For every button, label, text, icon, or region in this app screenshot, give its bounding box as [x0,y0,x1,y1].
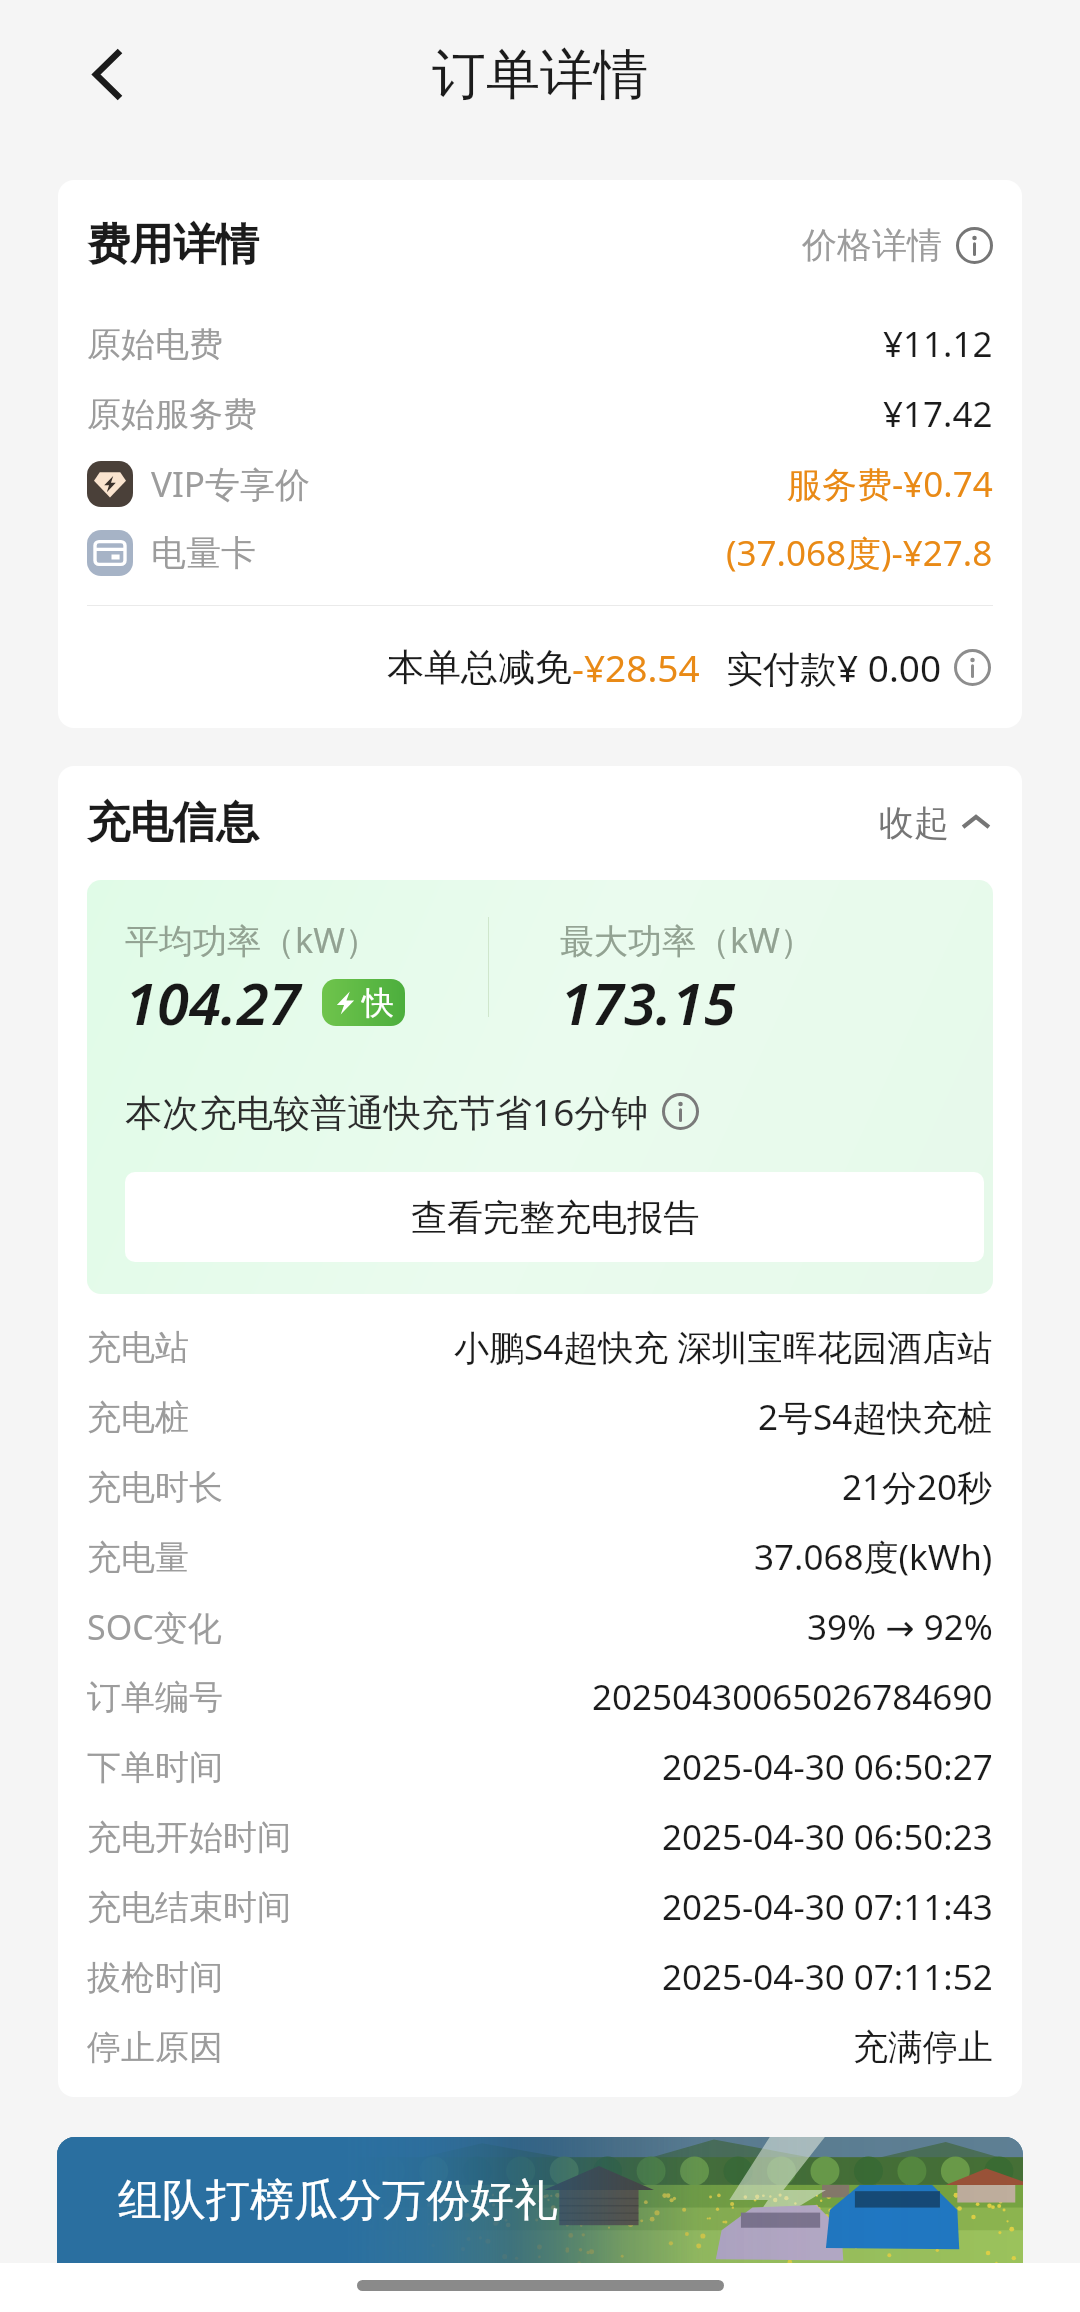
staticText: 小鹏S4超快充 深圳宝晖花园酒店站 [454,1323,993,1371]
staticText: (37.068度)-¥27.8 [726,529,993,577]
staticText: 充满停止 [853,2025,993,2069]
staticText: 停止原因 [87,2026,223,2069]
staticText: 充电量 [87,1536,189,1579]
staticText: 充电信息 [87,796,259,850]
staticText: 2025-04-30 07:11:52 [662,1953,993,2001]
staticText: 充电站 [87,1326,189,1369]
staticText: 充电时长 [87,1466,223,1509]
staticText: 查看完整充电报告 [411,1195,699,1240]
staticText: 订单详情 [432,41,648,109]
staticText: 原始服务费 [87,393,257,436]
staticText: 快 [362,983,394,1023]
staticText: 服务费-¥0.74 [787,460,993,508]
staticText: ¥17.42 [883,390,993,438]
staticText: 组队打榜瓜分万份好礼 [118,2173,558,2228]
button[interactable]: 组队打榜瓜分万份好礼 [57,2137,1023,2263]
staticText: 平均功率（kW） [125,917,379,963]
staticText: 费用详情 [87,218,259,272]
staticText: 37.068度(kWh) [754,1533,993,1581]
staticText: 原始电费 [87,323,223,366]
button[interactable]: Saved time info [660,1091,701,1132]
staticText: 最大功率（kW） [560,917,814,963]
staticText: 本单总减免 [387,644,572,691]
staticText: -¥28.54 [572,642,700,692]
button[interactable]: 价格详情 [802,223,993,267]
staticText: 拔枪时间 [87,1956,223,1999]
staticText: 充电桩 [87,1396,189,1439]
staticText: ¥11.12 [883,320,993,368]
staticText: 充电结束时间 [87,1886,291,1929]
staticText: 2025-04-30 06:50:23 [662,1813,993,1861]
staticText: 本次充电较普通快充节省16分钟 [125,1086,649,1137]
staticText: 收起 [879,801,949,845]
staticText: 2025-04-30 07:11:43 [662,1883,993,1931]
button[interactable]: Back [64,32,152,116]
staticText: 2025-04-30 06:50:27 [662,1743,993,1791]
staticText: 2号S4超快充桩 [758,1393,993,1441]
staticText: 充电开始时间 [87,1816,291,1859]
staticText: 下单时间 [87,1746,223,1789]
staticText: 20250430065026784690 [592,1673,993,1721]
staticText: VIP专享价 [151,460,311,508]
staticText: 21分20秒 [842,1463,993,1511]
staticText: 订单编号 [87,1676,223,1719]
staticText: 实付款¥ 0.00 [726,642,942,693]
staticText: 173.15 [560,963,736,1042]
staticText: SOC变化 [87,1604,222,1650]
button[interactable]: Payment details [952,647,993,688]
staticText: 104.27 [125,963,301,1042]
button[interactable]: 查看完整充电报告 [125,1172,984,1262]
staticText: 价格详情 [802,223,942,267]
staticText: 电量卡 [151,531,256,575]
button[interactable]: 收起 [879,801,993,845]
staticText: 39% → 92% [807,1603,993,1651]
